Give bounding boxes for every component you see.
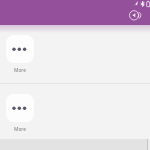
button[interactable]: More (0, 25, 150, 83)
button[interactable]: Volume (129, 10, 140, 21)
button[interactable]: More (6, 35, 34, 74)
button[interactable]: More (0, 84, 150, 139)
button[interactable]: More (6, 94, 34, 133)
staticText: More (14, 67, 26, 74)
staticText: More (14, 126, 26, 133)
